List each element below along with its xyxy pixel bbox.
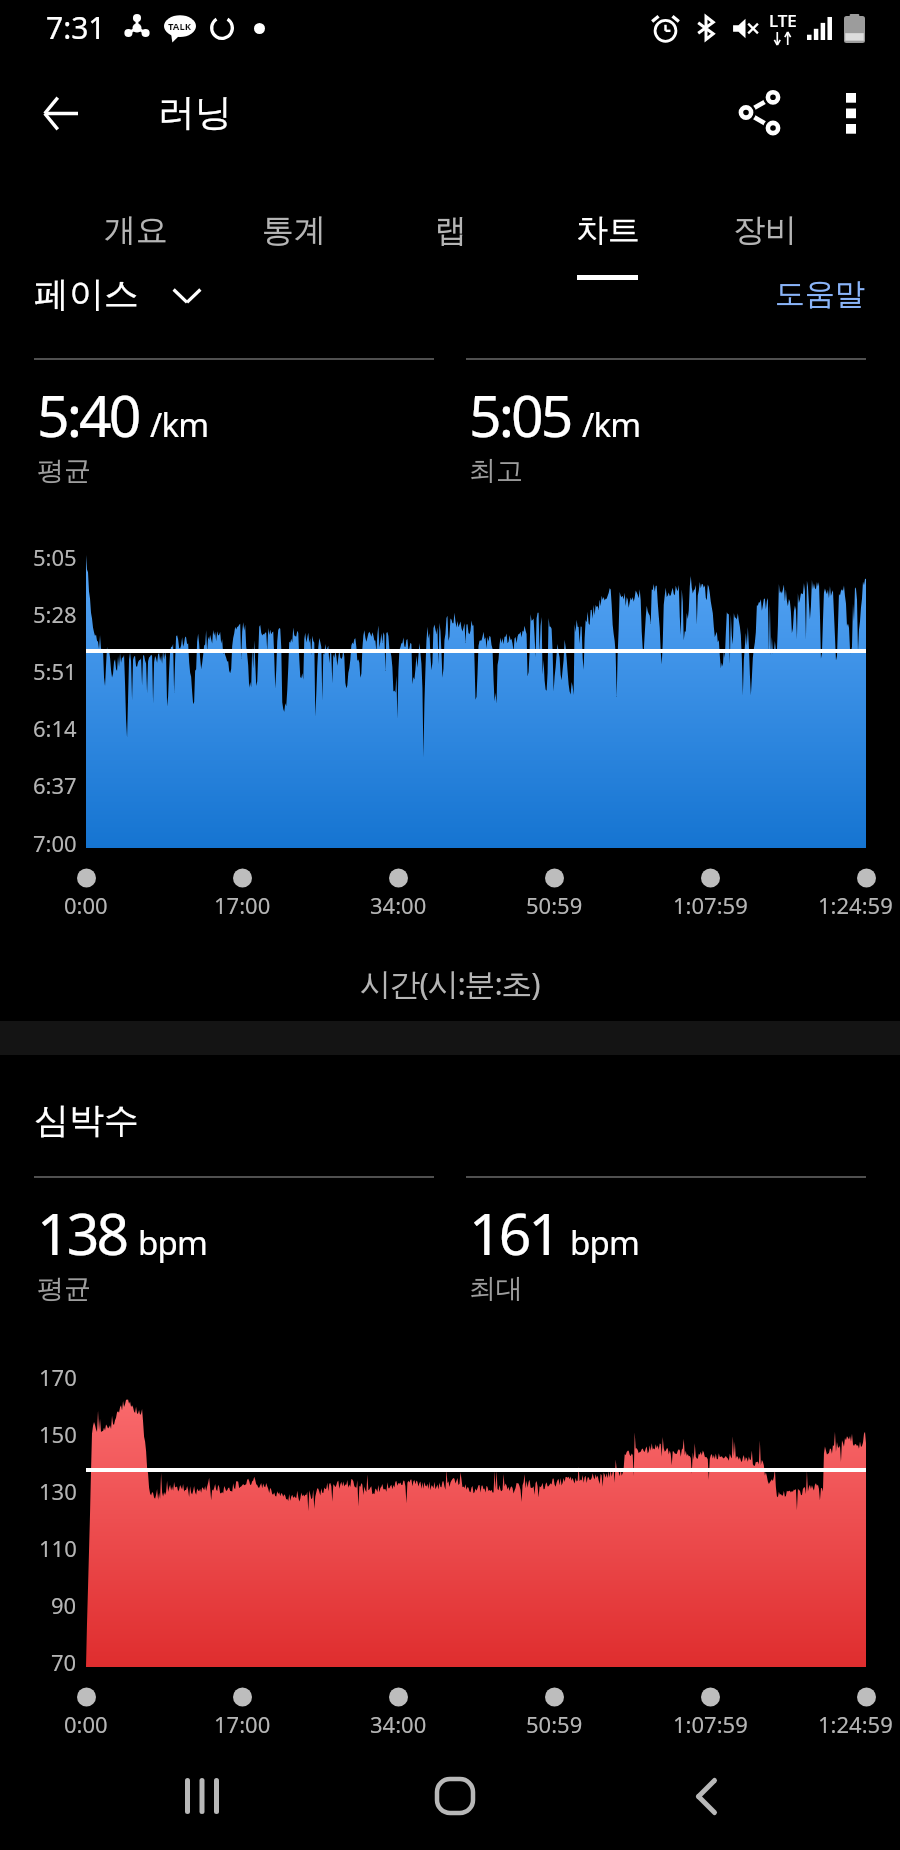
staticText: 17:00 (214, 1709, 271, 1739)
staticText: /km (582, 402, 641, 447)
staticText: 34:00 (370, 1709, 427, 1739)
staticText: 차트 (576, 210, 640, 250)
staticText: TALK (168, 20, 192, 33)
staticText: 장비 (733, 210, 797, 250)
staticText: 170 (39, 1362, 77, 1392)
staticText: 페이스 (34, 272, 139, 316)
staticText: 5:05 (33, 542, 77, 572)
staticText: 평균 (37, 1272, 91, 1306)
button[interactable]: Share (730, 83, 790, 143)
button[interactable]: 랩 (372, 196, 529, 288)
staticText: 5:28 (33, 599, 77, 629)
staticText: 34:00 (370, 890, 427, 920)
staticText: 50:59 (526, 1709, 583, 1739)
staticText: 138 (37, 1194, 127, 1272)
staticText: 5:40 (37, 376, 139, 454)
button[interactable]: More options (821, 83, 881, 143)
staticText: /km (150, 402, 209, 447)
staticText: 6:37 (33, 770, 77, 800)
staticText: 110 (39, 1533, 77, 1563)
staticText: 150 (39, 1419, 77, 1449)
staticText: 5:51 (33, 656, 77, 686)
staticText: 평균 (37, 454, 91, 488)
staticText: 러닝 (158, 89, 232, 136)
staticText: 130 (39, 1476, 77, 1506)
button[interactable]: 페이스 (34, 266, 202, 322)
staticText: 50:59 (526, 890, 583, 920)
button[interactable]: 장비 (686, 196, 843, 288)
staticText: 개요 (104, 210, 168, 250)
staticText: 최고 (469, 454, 523, 488)
staticText: 랩 (435, 210, 467, 250)
staticText: 70 (51, 1647, 77, 1677)
staticText: 7:31 (46, 7, 106, 48)
staticText: 6:14 (33, 713, 77, 743)
button[interactable]: 개요 (57, 196, 215, 288)
staticText: 5:05 (469, 376, 571, 454)
staticText: 0:00 (64, 1709, 108, 1739)
button[interactable]: 차트 (529, 196, 686, 288)
button[interactable]: Recent apps (142, 1756, 262, 1836)
staticText: 17:00 (214, 890, 271, 920)
staticText: 도움말 (775, 275, 865, 313)
staticText: 통계 (262, 210, 326, 250)
staticText: 161 (469, 1194, 559, 1272)
button[interactable]: Back (646, 1756, 766, 1836)
staticText: 1:07:59 (673, 890, 748, 920)
button[interactable]: Home (395, 1756, 515, 1836)
staticText: 최대 (469, 1272, 523, 1306)
staticText: 1:07:59 (673, 1709, 748, 1739)
staticText: 90 (51, 1590, 77, 1620)
staticText: 7:00 (33, 828, 77, 858)
button[interactable]: Back (31, 83, 91, 143)
staticText: bpm (138, 1220, 208, 1265)
staticText: 0:00 (64, 890, 108, 920)
staticText: 시간(시:분:초) (360, 962, 540, 1004)
staticText: 1:24:59 (818, 1709, 893, 1739)
staticText: 심박수 (34, 1098, 139, 1142)
staticText: LTE (769, 9, 797, 32)
button[interactable]: 도움말 (765, 266, 875, 322)
staticText: 1:24:59 (818, 890, 893, 920)
staticText: bpm (570, 1220, 640, 1265)
button[interactable]: 통계 (215, 196, 372, 288)
